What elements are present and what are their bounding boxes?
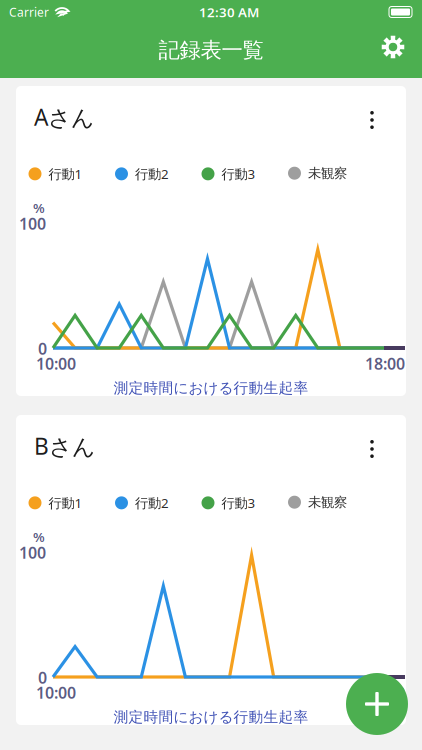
staticText: 行動1 bbox=[48, 165, 82, 183]
staticText: 10:00 bbox=[36, 353, 76, 374]
staticText: 0 bbox=[38, 667, 47, 688]
button[interactable]: More options bbox=[354, 427, 390, 471]
staticText: 100 bbox=[19, 542, 46, 563]
button[interactable]: More options bbox=[354, 98, 390, 142]
staticText: 行動3 bbox=[221, 165, 255, 183]
staticText: 行動2 bbox=[135, 165, 169, 183]
staticText: 0 bbox=[38, 338, 47, 359]
button[interactable]: Settings bbox=[371, 25, 415, 69]
staticText: 18:00 bbox=[365, 353, 405, 374]
button[interactable]: Add record bbox=[346, 673, 408, 735]
staticText: Bさん bbox=[34, 431, 95, 461]
staticText: 行動1 bbox=[48, 494, 82, 512]
staticText: Carrier bbox=[9, 4, 49, 20]
staticText: 未観察 bbox=[308, 494, 347, 510]
staticText: % bbox=[33, 528, 45, 546]
staticText: 18:00 bbox=[365, 682, 405, 703]
staticText: % bbox=[33, 199, 45, 217]
staticText: 記録表一覧 bbox=[158, 37, 263, 63]
staticText: 未観察 bbox=[308, 165, 347, 181]
staticText: 行動2 bbox=[135, 494, 169, 512]
staticText: 10:00 bbox=[36, 682, 76, 703]
staticText: 100 bbox=[19, 213, 46, 234]
staticText: 測定時間における行動生起率 bbox=[113, 379, 308, 397]
staticText: Aさん bbox=[34, 102, 94, 132]
staticText: 行動3 bbox=[221, 494, 255, 512]
staticText: 12:30 AM bbox=[199, 3, 259, 21]
staticText: 測定時間における行動生起率 bbox=[113, 708, 308, 726]
